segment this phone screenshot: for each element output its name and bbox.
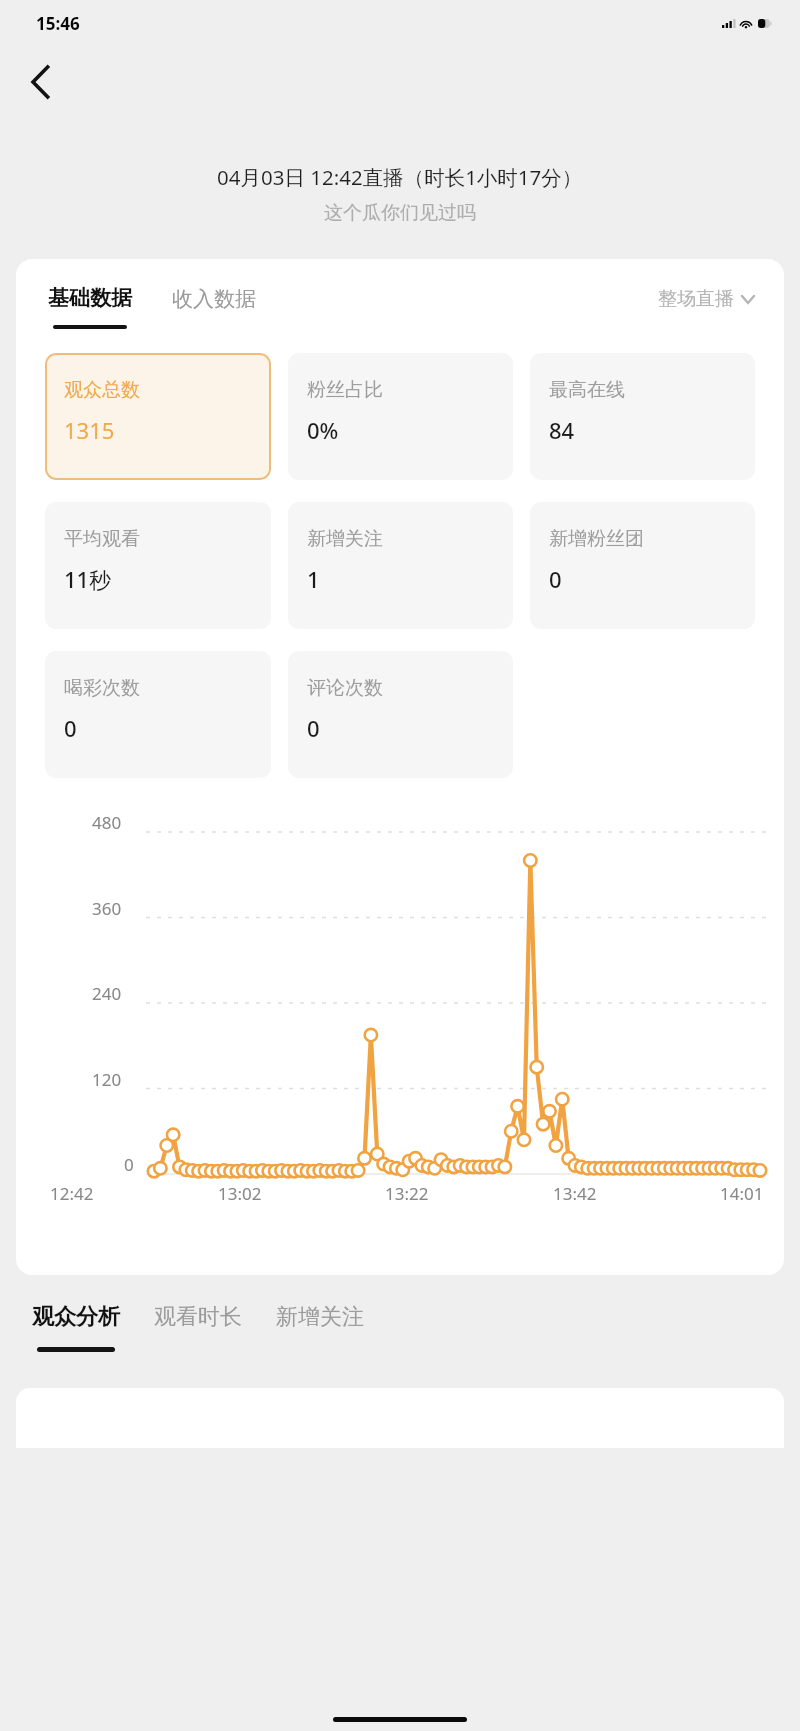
button[interactable]: 喝彩次数 bbox=[45, 651, 271, 778]
button[interactable]: 基础数据 bbox=[48, 285, 132, 329]
staticText: 新增关注 bbox=[276, 1303, 364, 1331]
button[interactable]: 观众总数 bbox=[45, 353, 271, 480]
staticText: 收入数据 bbox=[172, 286, 256, 312]
staticText: 13:42 bbox=[553, 1182, 597, 1205]
button[interactable]: 新增关注 bbox=[288, 502, 513, 629]
staticText: 14:01 bbox=[720, 1182, 764, 1205]
staticText: 评论次数 bbox=[307, 676, 383, 700]
staticText: 基础数据 bbox=[48, 285, 132, 311]
staticText: 13:22 bbox=[385, 1182, 429, 1205]
button[interactable]: Back bbox=[14, 56, 66, 108]
staticText: 新增粉丝团 bbox=[549, 527, 644, 551]
staticText: 平均观看 bbox=[64, 527, 140, 551]
staticText: 04月03日 12:42直播（时长1小时17分） bbox=[217, 163, 583, 191]
staticText: 整场直播 bbox=[658, 287, 734, 311]
staticText: 12:42 bbox=[50, 1182, 94, 1205]
staticText: 新增关注 bbox=[307, 527, 383, 551]
button[interactable]: 粉丝占比 bbox=[288, 353, 513, 480]
staticText: 15:46 bbox=[36, 12, 80, 35]
staticText: 最高在线 bbox=[549, 378, 625, 402]
button[interactable]: 收入数据 bbox=[172, 285, 256, 312]
staticText: 0% bbox=[307, 415, 339, 445]
staticText: 240 bbox=[92, 982, 122, 1005]
staticText: 这个瓜你们见过吗 bbox=[324, 201, 476, 225]
staticText: 120 bbox=[92, 1068, 122, 1091]
button[interactable]: 最高在线 bbox=[530, 353, 755, 480]
staticText: 观看时长 bbox=[154, 1303, 242, 1331]
button[interactable]: 评论次数 bbox=[288, 651, 513, 778]
staticText: 1315 bbox=[64, 415, 115, 445]
staticText: 84 bbox=[549, 415, 575, 445]
button[interactable]: 新增粉丝团 bbox=[530, 502, 755, 629]
staticText: 13:02 bbox=[218, 1182, 262, 1205]
staticText: 480 bbox=[92, 811, 122, 834]
staticText: 11秒 bbox=[64, 564, 112, 594]
staticText: 360 bbox=[92, 897, 122, 920]
button[interactable]: 平均观看 bbox=[45, 502, 271, 629]
button[interactable]: 新增关注 bbox=[276, 1303, 364, 1331]
staticText: 喝彩次数 bbox=[64, 676, 140, 700]
staticText: 粉丝占比 bbox=[307, 378, 383, 402]
staticText: 1 bbox=[307, 564, 320, 594]
staticText: 0 bbox=[307, 713, 320, 743]
staticText: 观众分析 bbox=[32, 1303, 120, 1331]
staticText: 0 bbox=[64, 713, 77, 743]
staticText: 0 bbox=[549, 564, 562, 594]
button[interactable]: 观看时长 bbox=[154, 1303, 242, 1331]
button[interactable]: 观众分析 bbox=[32, 1303, 120, 1352]
button[interactable]: 整场直播 bbox=[658, 287, 754, 311]
staticText: 0 bbox=[124, 1153, 134, 1176]
staticText: 观众总数 bbox=[64, 378, 140, 402]
